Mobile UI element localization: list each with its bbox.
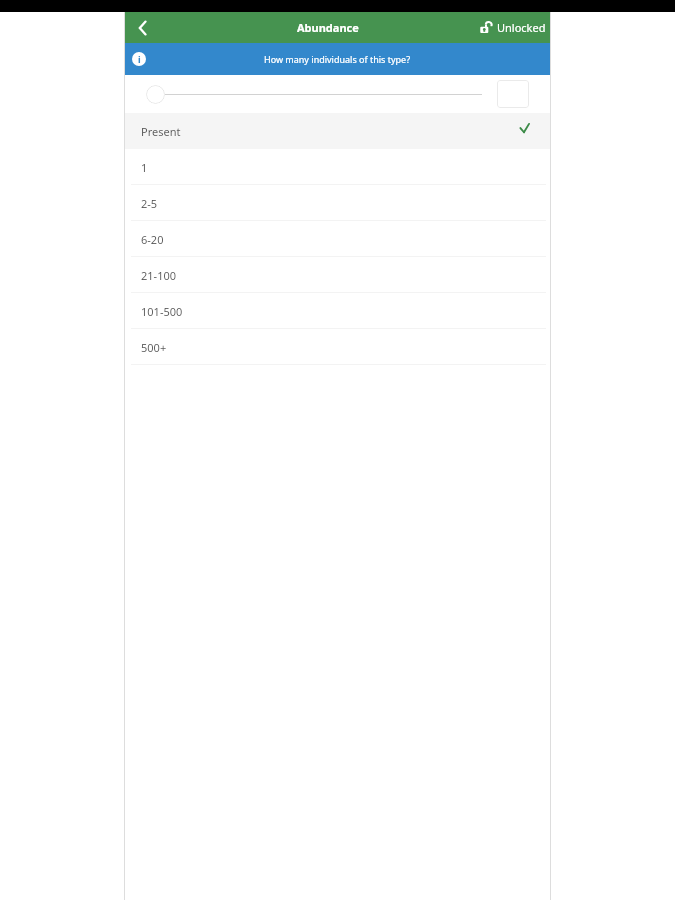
staticText: i (138, 53, 141, 65)
other: Info (132, 52, 146, 66)
button[interactable]: Count input (497, 80, 529, 108)
button[interactable]: 101-500 (124, 293, 551, 329)
button[interactable]: 1 (124, 149, 551, 185)
staticText: 500+ (141, 340, 167, 355)
button[interactable]: Slider thumb (146, 85, 165, 104)
staticText: Present (141, 124, 181, 139)
button[interactable]: Back (130, 15, 156, 41)
button[interactable]: 500+ (124, 329, 551, 365)
staticText: 1 (141, 160, 148, 175)
button[interactable]: Unlocked (480, 20, 546, 35)
staticText: 101-500 (141, 304, 183, 319)
button[interactable]: 2-5 (124, 185, 551, 221)
staticText: 21-100 (141, 268, 177, 283)
button[interactable]: Present (124, 113, 551, 149)
staticText: Abundance (297, 20, 359, 35)
staticText: 2-5 (141, 196, 158, 211)
staticText: 6-20 (141, 232, 164, 247)
staticText: How many individuals of this type? (264, 53, 411, 65)
button[interactable]: 6-20 (124, 221, 551, 257)
staticText: Unlocked (497, 20, 546, 35)
button[interactable]: 21-100 (124, 257, 551, 293)
